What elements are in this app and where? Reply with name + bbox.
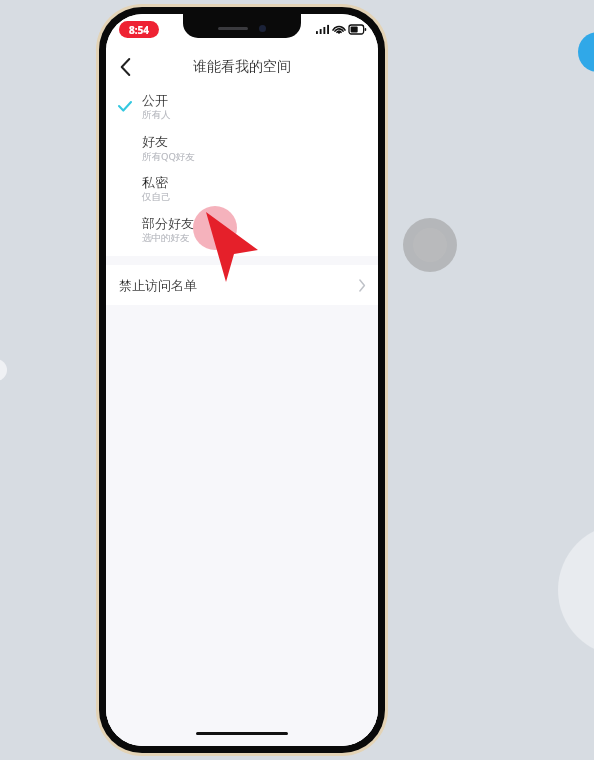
- staticText: 私密: [142, 174, 168, 190]
- staticText: 谁能看我的空间: [193, 58, 291, 76]
- button[interactable]: 部分好友: [106, 209, 378, 250]
- button[interactable]: 好友: [106, 127, 378, 168]
- staticText: 部分好友: [142, 215, 194, 231]
- staticText: 所有QQ好友: [142, 150, 195, 163]
- staticText: 禁止访问名单: [119, 277, 197, 293]
- button[interactable]: 私密: [106, 168, 378, 209]
- button[interactable]: Back: [106, 48, 144, 86]
- staticText: 好友: [142, 133, 168, 149]
- staticText: 所有人: [142, 109, 171, 121]
- button[interactable]: 公开: [106, 86, 378, 127]
- button[interactable]: 禁止访问名单: [106, 265, 378, 305]
- staticText: 8:54: [129, 23, 149, 37]
- staticText: 公开: [142, 92, 168, 108]
- staticText: 仅自己: [142, 191, 171, 203]
- staticText: 选中的好友: [142, 232, 190, 244]
